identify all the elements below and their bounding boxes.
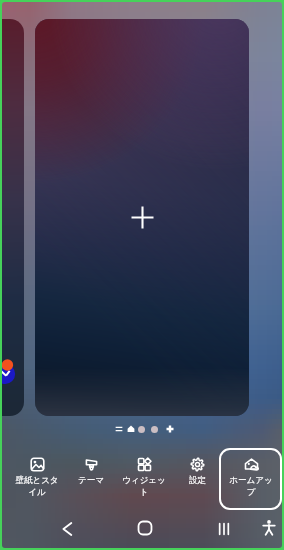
staticText: 設定 xyxy=(189,475,206,486)
other: Widget xyxy=(137,457,152,472)
staticText: 壁紙とスタ イル xyxy=(15,475,59,498)
button[interactable]: Add page xyxy=(164,423,176,435)
other: Add home screen page xyxy=(131,206,154,229)
button[interactable]: Back xyxy=(55,517,79,541)
button[interactable]: Theme xyxy=(59,448,122,510)
other: Wallpaper and style xyxy=(30,457,45,472)
button[interactable]: Wallpaper and style xyxy=(5,448,68,510)
other: Home Up xyxy=(244,457,259,472)
button[interactable]: Widget xyxy=(112,448,175,510)
button[interactable]: Home Up xyxy=(219,448,282,510)
button[interactable]: Home page xyxy=(125,423,137,435)
staticText: ウィジェッ ト xyxy=(122,475,166,498)
staticText: テーマ xyxy=(78,475,104,486)
other: Theme xyxy=(84,457,99,472)
button[interactable]: Settings xyxy=(166,448,229,510)
button[interactable]: Home xyxy=(133,516,157,540)
button[interactable]: Page xyxy=(151,426,158,433)
button[interactable]: s xyxy=(2,19,24,416)
other: Settings xyxy=(190,457,205,472)
button[interactable]: All pages xyxy=(113,423,125,435)
button[interactable]: Add home screen page xyxy=(35,19,249,416)
staticText: ホームアッ プ xyxy=(229,475,273,498)
button[interactable]: Recent apps xyxy=(212,517,236,541)
button[interactable]: Accessibility xyxy=(257,516,281,540)
button[interactable]: Page xyxy=(138,426,145,433)
